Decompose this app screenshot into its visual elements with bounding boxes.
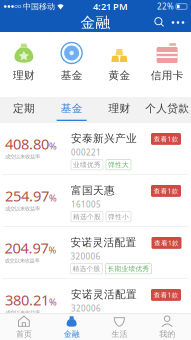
staticText: 安泰新兴产业 (71, 132, 137, 145)
button[interactable]: 生活 (95, 313, 143, 340)
staticText: 生活 (111, 329, 127, 339)
staticText: 精选个股 (72, 265, 100, 273)
button[interactable]: 个人贷款 (143, 97, 191, 123)
staticText: % (49, 140, 57, 152)
staticText: 金融 (80, 13, 110, 31)
staticText: % (49, 192, 57, 204)
button[interactable]: 黄金 (95, 32, 143, 97)
button[interactable]: 我的 (143, 313, 191, 340)
button[interactable]: 254.97 (0, 175, 191, 227)
staticText: 中国移动 (21, 2, 57, 11)
staticText: 业绩优秀 (73, 161, 101, 169)
staticText: 定期 (13, 102, 35, 115)
button[interactable]: More (168, 14, 188, 31)
staticText: 161005 (71, 199, 101, 210)
staticText: 理财 (108, 102, 130, 115)
staticText: 254.97 (5, 186, 49, 205)
staticText: 查看1款 (153, 290, 178, 299)
staticText: 4:21 PM (93, 0, 128, 13)
button[interactable]: 理财 (95, 97, 143, 123)
staticText: 个人贷款 (145, 102, 189, 115)
staticText: 我的 (159, 329, 175, 339)
button[interactable]: 理财 (0, 32, 48, 97)
staticText: 成交以来收益率 (4, 257, 39, 264)
staticText: 000221 (71, 147, 101, 158)
button[interactable]: 定期 (0, 97, 48, 123)
staticText: % (48, 244, 56, 256)
button[interactable]: Search (151, 14, 168, 31)
staticText: 精选个股 (73, 213, 101, 221)
button[interactable]: 基金 (48, 97, 96, 123)
button[interactable]: 金融 (48, 313, 96, 340)
staticText: 320006 (70, 251, 100, 262)
staticText: 查看1款 (154, 238, 179, 247)
staticText: 查看1款 (153, 134, 178, 143)
staticText: 长期业绩优秀 (107, 265, 149, 273)
staticText: 成交以来收益率 (5, 205, 40, 212)
button[interactable]: 408.80 (0, 123, 191, 175)
staticText: 弹性小 (108, 317, 129, 325)
button[interactable]: 204.97 (0, 227, 191, 279)
staticText: 204.97 (4, 238, 48, 257)
staticText: 金融 (64, 329, 80, 339)
button[interactable]: 380.21 (0, 279, 191, 331)
staticText: 成交以来收益率 (5, 153, 40, 160)
staticText: 408.80 (5, 134, 49, 153)
staticText: 富国天惠 (71, 184, 115, 197)
staticText: 安诺灵活配置 (71, 288, 137, 301)
staticText: 基金 (61, 69, 83, 82)
staticText: 安诺灵活配置 (70, 236, 136, 249)
staticText: 黄金 (108, 69, 130, 82)
staticText: 理财 (13, 69, 35, 82)
staticText: % (49, 296, 57, 308)
staticText: 380.21 (5, 290, 49, 309)
staticText: 精选个股 (73, 317, 101, 325)
staticText: 弹性大 (108, 161, 129, 169)
button[interactable]: 首页 (0, 313, 48, 340)
button[interactable]: 基金 (48, 32, 96, 97)
staticText: 成交以来收益率 (5, 309, 40, 316)
staticText: 基金 (61, 102, 83, 115)
staticText: 22% (157, 1, 174, 12)
staticText: 查看1款 (153, 186, 178, 195)
staticText: 信用卡 (151, 69, 184, 82)
staticText: 320006 (71, 303, 101, 314)
button[interactable]: 信用卡 (143, 32, 191, 97)
staticText: 弹性小 (108, 213, 129, 221)
staticText: 首页 (16, 329, 32, 339)
